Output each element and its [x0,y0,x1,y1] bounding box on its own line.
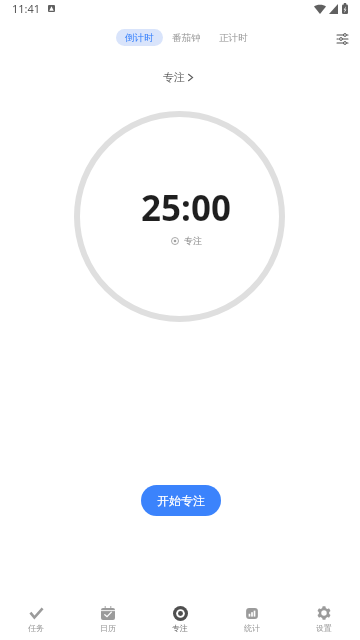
staticText: 11:41 [12,1,41,16]
button[interactable]: 正计时 [210,29,257,46]
button[interactable]: 专注 [157,67,199,87]
staticText: 25:00 [141,184,231,232]
staticText: 专注 [163,70,185,84]
staticText: 设置 [316,623,332,633]
staticText: 专注 [172,623,188,633]
staticText: 正计时 [219,32,248,44]
staticText: 倒计时 [125,32,154,44]
button[interactable]: 开始专注 [141,485,221,516]
staticText: 任务 [28,623,44,633]
button[interactable]: Timer settings [329,26,355,52]
button[interactable]: 设置 [288,594,360,640]
button[interactable]: 日历 [72,594,144,640]
button[interactable]: 专注 [144,594,216,640]
button[interactable]: 倒计时 [116,29,163,46]
staticText: 开始专注 [157,493,205,508]
button[interactable]: 番茄钟 [163,29,210,46]
staticText: 番茄钟 [172,32,201,44]
staticText: 日历 [100,623,116,633]
button[interactable]: 任务 [0,594,72,640]
staticText: 专注 [184,235,202,246]
button[interactable]: 统计 [216,594,288,640]
staticText: 统计 [244,623,260,633]
